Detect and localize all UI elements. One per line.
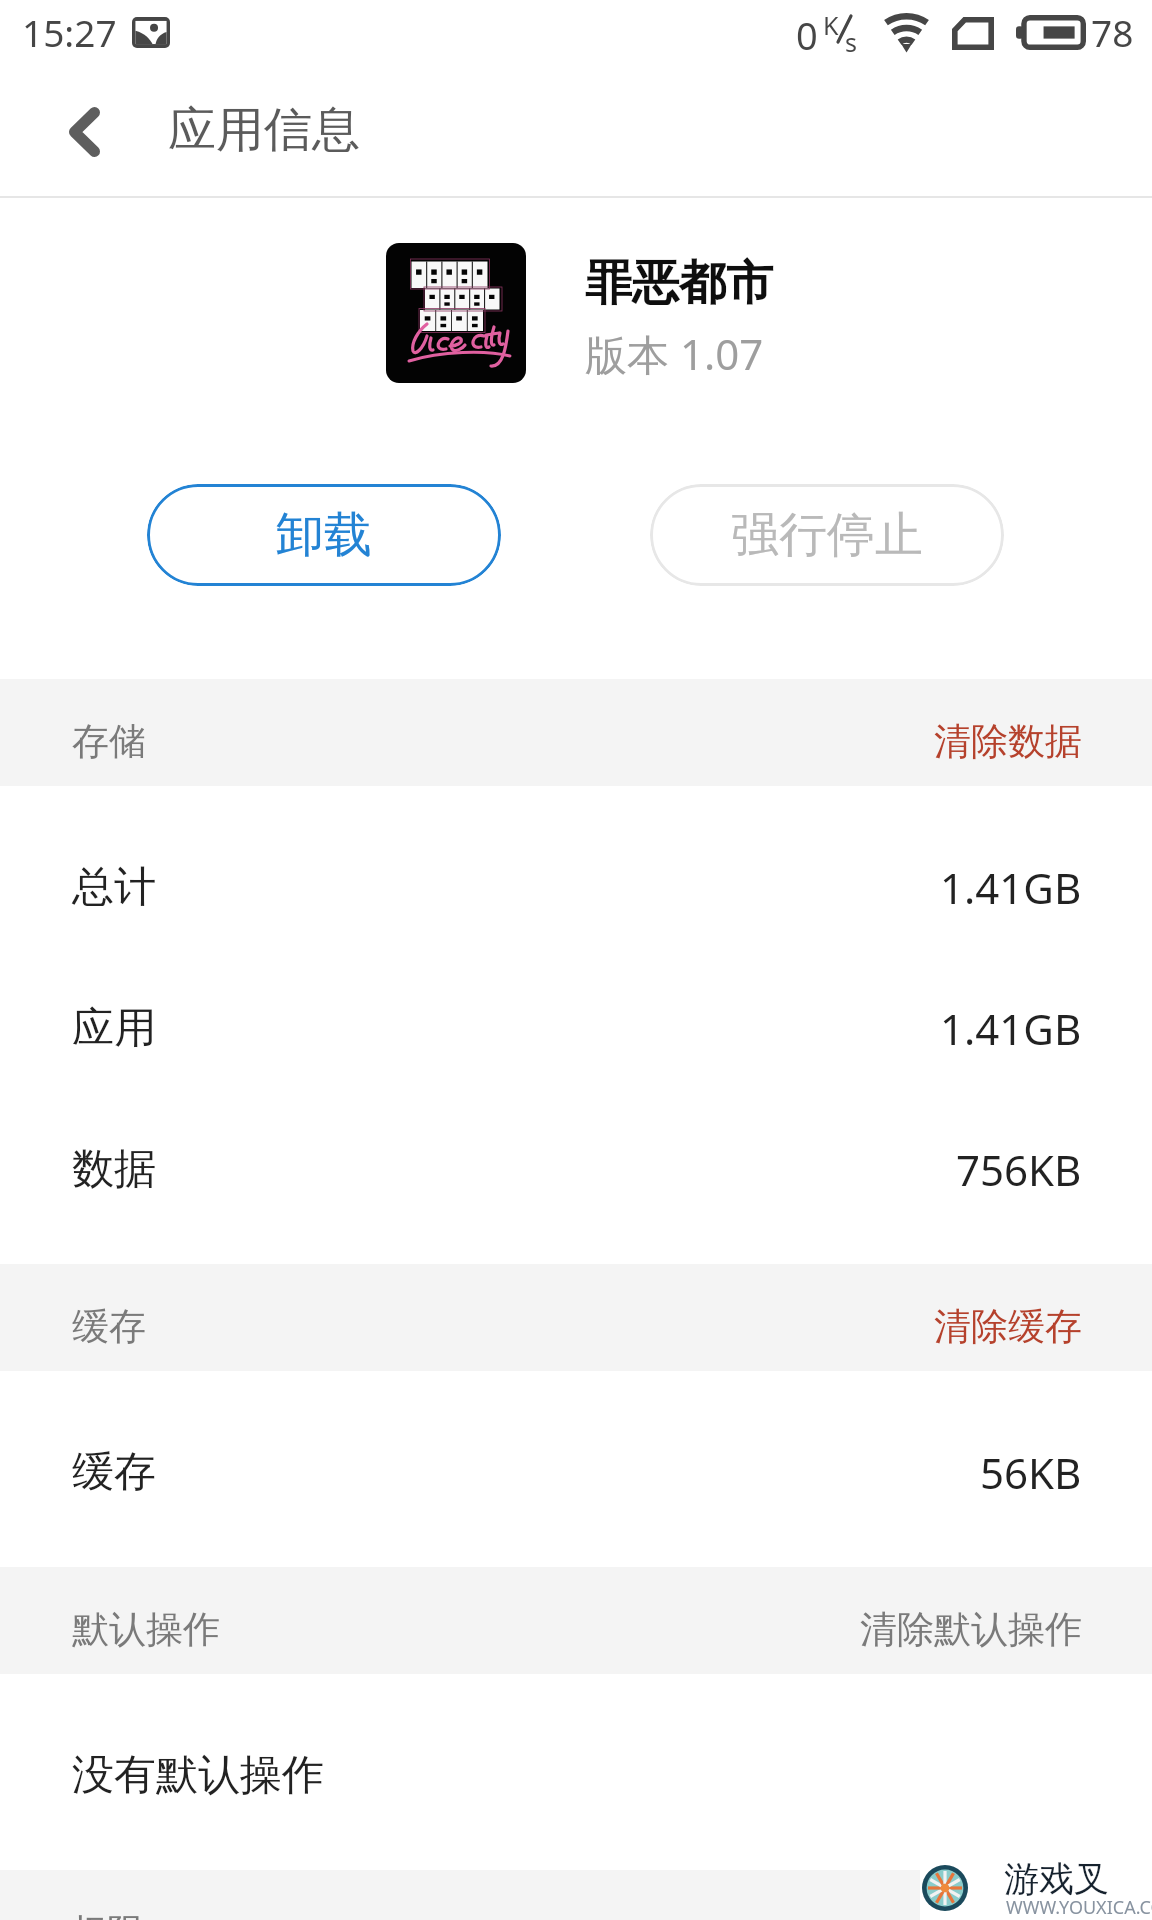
staticText: 缓存	[72, 1303, 146, 1350]
staticText: 0	[796, 9, 818, 61]
button[interactable]: 默认操作	[0, 1567, 1152, 1674]
button[interactable]: 缓存	[0, 1264, 1152, 1371]
button[interactable]: 应用	[0, 954, 1152, 1095]
staticText: 78	[1091, 7, 1134, 57]
staticText: 存储	[72, 718, 146, 765]
staticText: 1.41GB	[940, 859, 1082, 916]
staticText: 版本 1.07	[585, 325, 764, 382]
staticText: 权限	[70, 1909, 144, 1920]
staticText: 1.41GB	[940, 1000, 1082, 1057]
staticText: 清除默认操作	[860, 1606, 1082, 1653]
button[interactable]: 没有默认操作	[0, 1701, 1152, 1842]
staticText: WWW.YOUXICA.COM	[1006, 1895, 1152, 1920]
button[interactable]: 卸载	[147, 484, 501, 586]
staticText: 罪恶都市	[585, 254, 773, 313]
staticText: 清除数据	[934, 718, 1082, 765]
staticText: 游戏叉	[1004, 1857, 1109, 1901]
button[interactable]: 缓存	[0, 1398, 1152, 1539]
button[interactable]: 总计	[0, 813, 1152, 954]
staticText: 缓存	[72, 1446, 156, 1499]
staticText: 56KB	[980, 1444, 1082, 1501]
staticText: s	[845, 25, 857, 59]
staticText: 应用	[72, 1002, 156, 1055]
staticText: 数据	[72, 1143, 156, 1196]
button[interactable]: Back	[38, 86, 132, 180]
button[interactable]: 存储	[0, 679, 1152, 786]
staticText: 默认操作	[72, 1606, 220, 1653]
staticText: 没有默认操作	[72, 1749, 324, 1802]
staticText: 15:27	[22, 7, 117, 57]
staticText: 强行停止	[731, 505, 923, 565]
staticText: 清除缓存	[934, 1303, 1082, 1350]
staticText: 756KB	[956, 1141, 1082, 1198]
staticText: 卸载	[276, 505, 372, 565]
button[interactable]: 数据	[0, 1095, 1152, 1236]
staticText: K	[823, 8, 839, 42]
staticText: 应用信息	[168, 100, 360, 160]
button[interactable]: 强行停止	[650, 484, 1004, 586]
staticText: 总计	[72, 861, 156, 914]
